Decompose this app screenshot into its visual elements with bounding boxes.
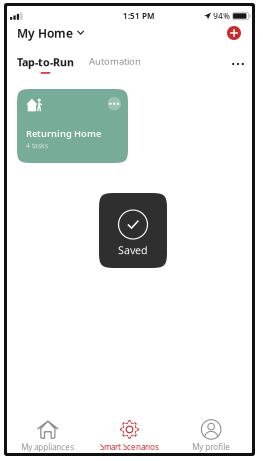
- staticText: My profile: [192, 442, 230, 452]
- staticText: My appliances: [21, 442, 74, 452]
- staticText: 1:51 PM: [123, 11, 154, 21]
- button[interactable]: Automation: [74, 44, 141, 67]
- button[interactable]: Add: [223, 23, 245, 43]
- staticText: Automation: [89, 55, 141, 67]
- staticText: Tap-to-Run: [17, 55, 74, 69]
- button[interactable]: Tap-to-Run: [17, 44, 74, 74]
- button[interactable]: More options: [228, 44, 248, 73]
- staticText: Returning Home: [26, 127, 101, 140]
- staticText: 4 tasks: [26, 141, 48, 150]
- button[interactable]: Smart Scenarios: [89, 420, 170, 452]
- staticText: Smart Scenarios: [100, 442, 159, 452]
- staticText: Saved: [118, 243, 148, 257]
- button[interactable]: My Home: [17, 20, 88, 46]
- button[interactable]: My appliances: [7, 419, 89, 452]
- staticText: 94%: [213, 11, 230, 21]
- button[interactable]: My profile: [170, 420, 252, 452]
- staticText: My Home: [17, 25, 73, 41]
- button[interactable]: Returning Home: [17, 89, 128, 163]
